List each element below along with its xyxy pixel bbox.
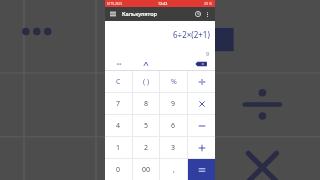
staticText: ( ) — [143, 77, 150, 87]
staticText: C — [116, 77, 121, 87]
button[interactable]: 8 — [133, 93, 159, 114]
button[interactable]: Menu — [108, 9, 118, 19]
staticText: 9 — [171, 99, 176, 109]
button[interactable]: Backspace — [187, 58, 215, 70]
staticText: 1 — [116, 143, 121, 153]
button[interactable]: 0 — [105, 159, 132, 180]
button[interactable]: Divide — [188, 71, 215, 92]
staticText: 8 — [144, 99, 149, 109]
button[interactable]: 9 — [160, 93, 187, 114]
staticText: 6 — [171, 121, 176, 131]
button[interactable]: 00 — [133, 159, 159, 180]
button[interactable]: C — [105, 71, 132, 92]
staticText: 20 % — [204, 1, 213, 6]
button[interactable]: 5 — [133, 115, 159, 136]
button[interactable]: 7 — [105, 93, 132, 114]
staticText: 2 — [144, 143, 149, 153]
staticText: 12:42 — [158, 1, 168, 6]
button[interactable]: % — [160, 71, 187, 92]
button[interactable]: ( ) — [133, 71, 159, 92]
staticText: 9 — [206, 50, 210, 57]
staticText: 00 — [142, 165, 151, 175]
staticText: 4 — [116, 121, 121, 131]
staticText: 5 — [144, 121, 149, 131]
staticText: 0 — [116, 165, 121, 175]
button[interactable]: 2 — [133, 137, 159, 158]
button[interactable]: Power — [132, 58, 159, 70]
button[interactable]: Equals — [188, 159, 215, 180]
button[interactable]: More options — [203, 10, 212, 19]
button[interactable]: 6 — [160, 115, 187, 136]
staticText: MTS-RUS — [107, 1, 123, 6]
staticText: 3 — [171, 143, 176, 153]
button[interactable]: Minus — [188, 115, 215, 136]
button[interactable]: 4 — [105, 115, 132, 136]
button[interactable]: 1 — [105, 137, 132, 158]
staticText: Калькулятор — [122, 10, 158, 18]
button[interactable]: Plus — [188, 137, 215, 158]
button[interactable]: History — [193, 9, 203, 19]
staticText: 6÷2×(2+1) — [173, 29, 210, 40]
staticText: , — [173, 165, 175, 175]
button[interactable]: , — [160, 159, 187, 180]
staticText: 7 — [116, 99, 121, 109]
button[interactable]: 3 — [160, 137, 187, 158]
staticText: % — [171, 77, 177, 87]
button[interactable]: More functions — [105, 58, 132, 70]
button[interactable]: Multiply — [188, 93, 215, 114]
